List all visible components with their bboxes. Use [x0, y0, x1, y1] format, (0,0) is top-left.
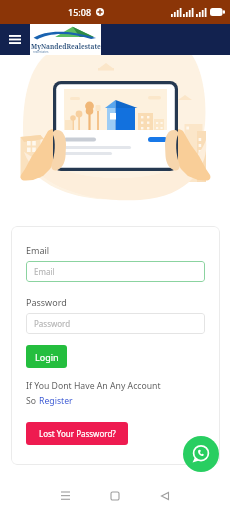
button[interactable]: Home: [100, 481, 130, 511]
staticText: MyNandedRealestates: [31, 42, 101, 51]
button[interactable]: Login: [26, 345, 67, 368]
button[interactable]: Password: [26, 313, 205, 334]
staticText: Password: [26, 296, 67, 308]
button[interactable]: Chat on WhatsApp: [183, 436, 219, 472]
staticText: Email: [26, 244, 50, 256]
staticText: Email: [34, 266, 55, 277]
staticText: Lost Your Password?: [39, 428, 116, 439]
button[interactable]: Register: [39, 395, 73, 407]
staticText: So: [26, 395, 39, 407]
button[interactable]: Lost Your Password?: [26, 422, 128, 445]
button[interactable]: Back: [150, 481, 180, 511]
staticText: Register: [39, 395, 73, 407]
staticText: realestates: [33, 50, 49, 54]
button[interactable]: Recent apps: [50, 481, 80, 511]
button[interactable]: Email: [26, 261, 205, 282]
staticText: Login: [35, 351, 59, 363]
staticText: 15:08: [68, 6, 92, 18]
staticText: Password: [34, 318, 71, 329]
button[interactable]: Open navigation menu: [0, 24, 30, 55]
staticText: If You Dont Have An Any Account: [26, 380, 161, 392]
button[interactable]: MyNandedRealestates home: [30, 24, 101, 55]
